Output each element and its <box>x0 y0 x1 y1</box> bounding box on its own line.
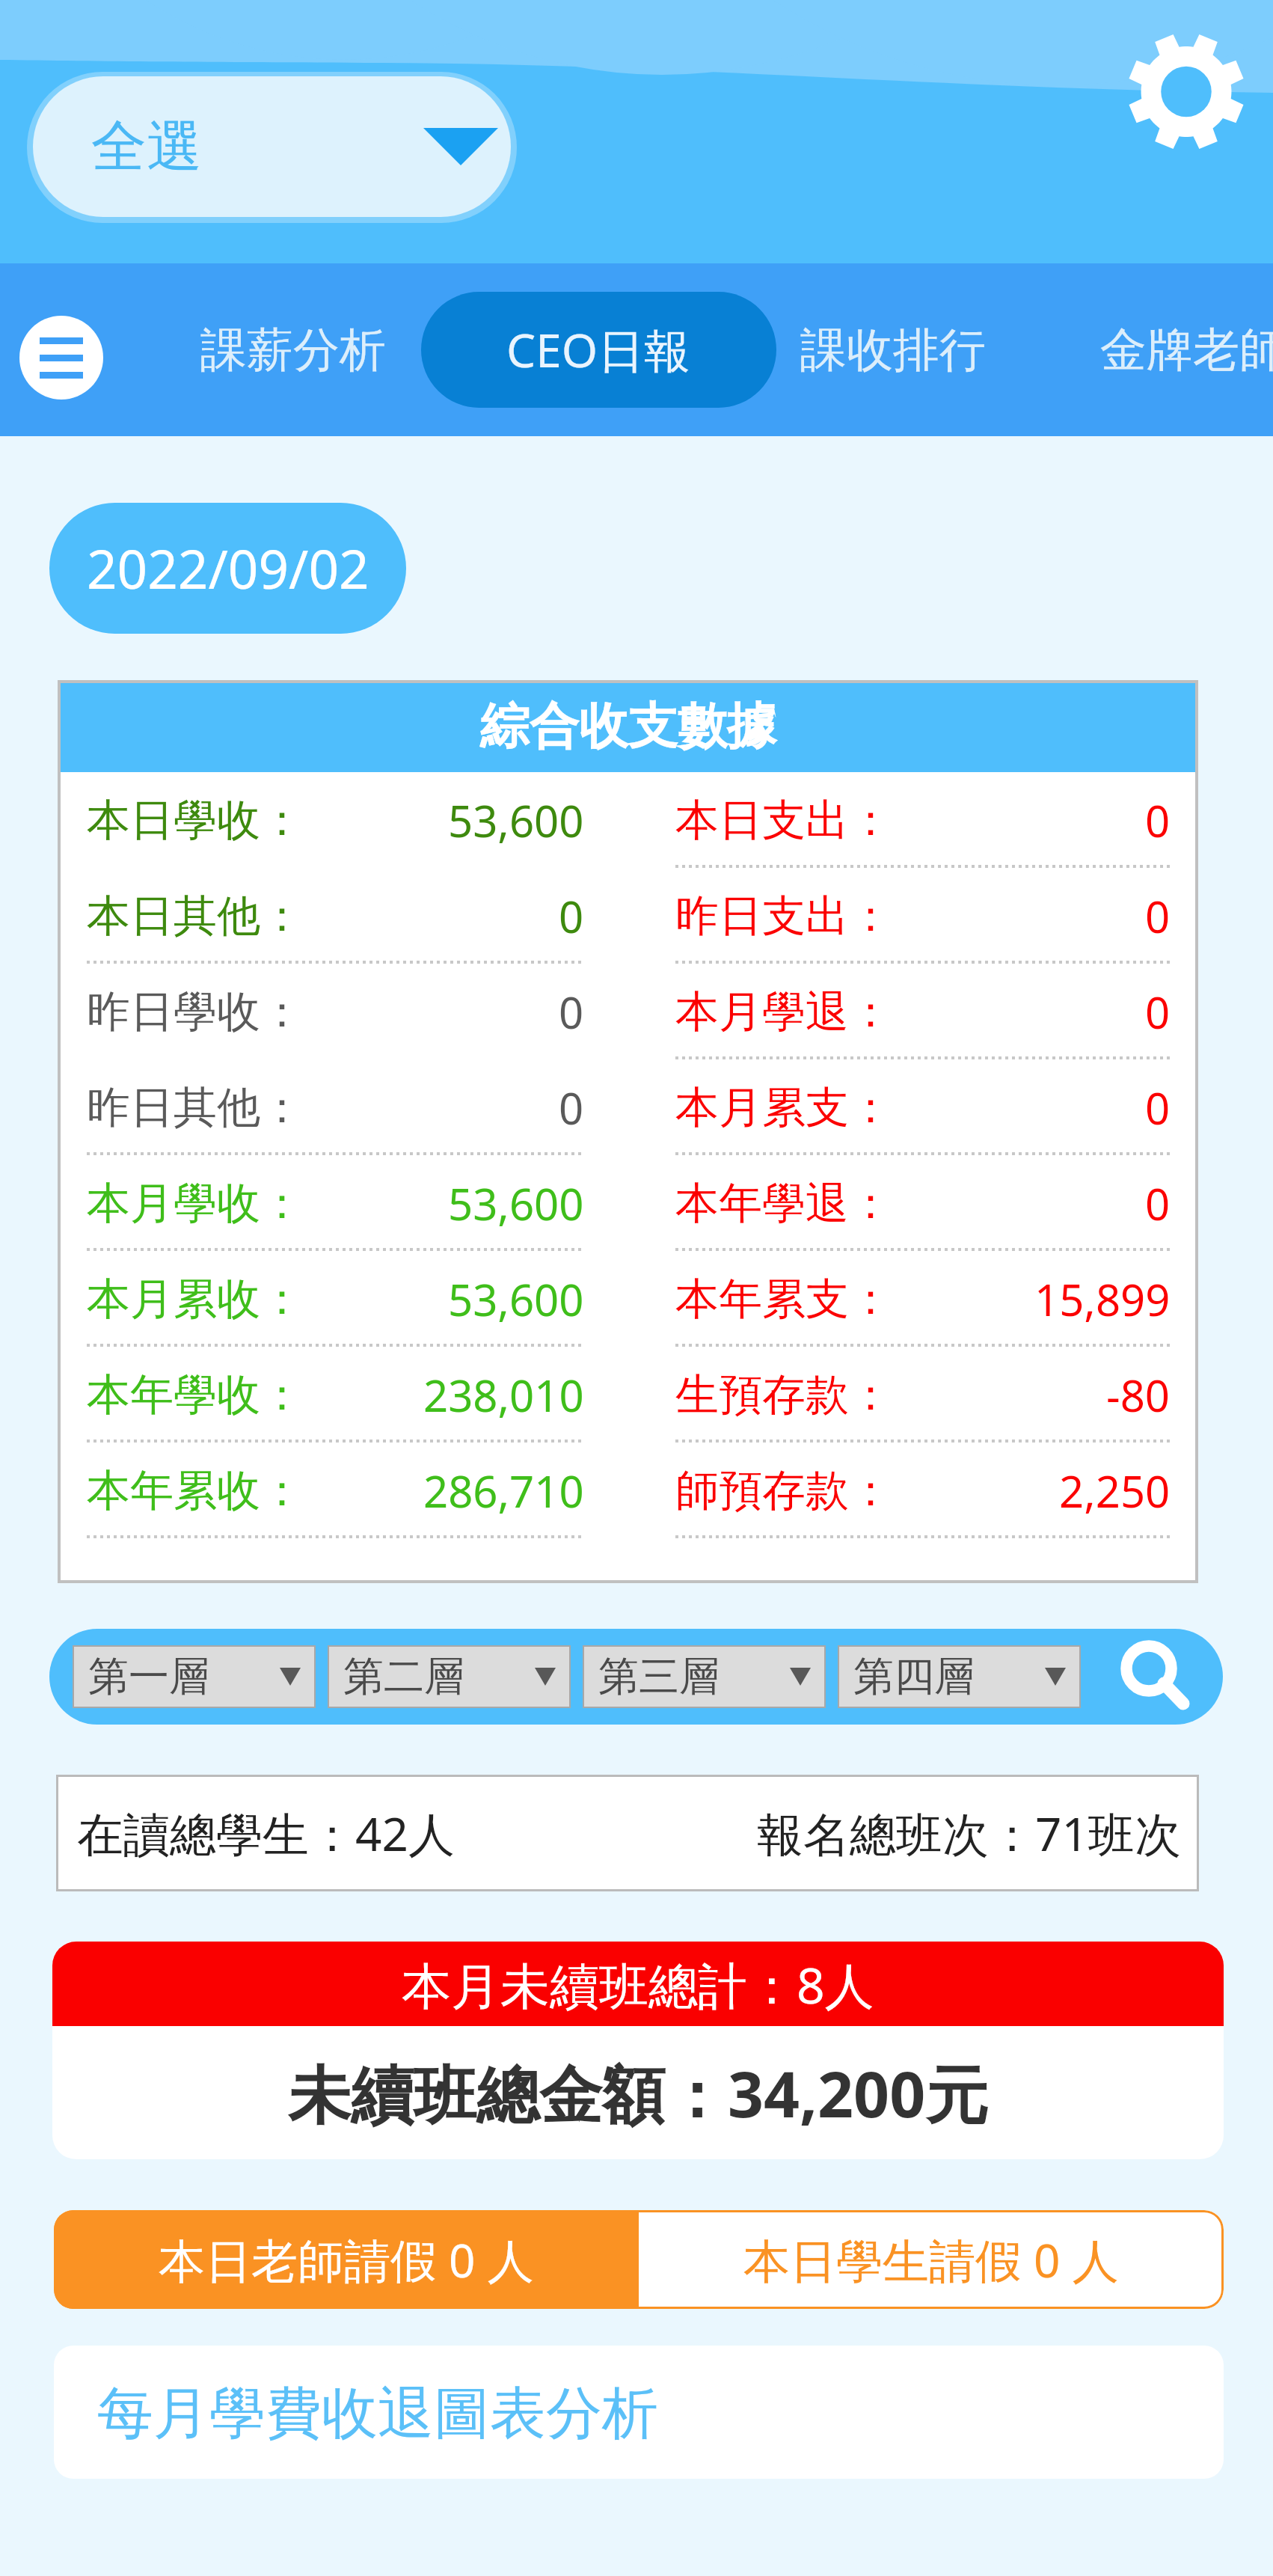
staticText: 2,250 <box>1059 1461 1171 1520</box>
staticText: 未續班總金額：34,200元 <box>288 2050 989 2136</box>
staticText: 本日老師請假 0 人 <box>159 2228 534 2292</box>
staticText: 15,899 <box>1034 1270 1171 1329</box>
staticText: 0 <box>1145 791 1171 850</box>
staticText: 報名總班次：71班次 <box>757 1802 1181 1865</box>
staticText: 0 <box>1145 1078 1171 1137</box>
staticText: 本年學退： <box>675 1176 892 1231</box>
staticText: 本日支出： <box>675 793 892 848</box>
staticText: 師預存款： <box>675 1463 892 1518</box>
staticText: 0 <box>559 982 584 1041</box>
staticText: 全選 <box>91 112 202 182</box>
staticText: 昨日其他： <box>87 1080 304 1135</box>
staticText: 0 <box>559 1078 584 1137</box>
button[interactable]: 第一層 <box>73 1645 316 1708</box>
staticText: 第一層 <box>88 1651 209 1702</box>
button[interactable]: Search <box>1114 1636 1196 1718</box>
staticText: 綜合收支數據 <box>480 695 776 757</box>
staticText: 第二層 <box>343 1651 464 1702</box>
staticText: 2022/09/02 <box>87 532 369 605</box>
button[interactable]: 金牌老師 <box>1113 321 1273 379</box>
staticText: 第三層 <box>598 1651 720 1702</box>
button[interactable]: 第四層 <box>838 1645 1081 1708</box>
staticText: 53,600 <box>448 1174 584 1233</box>
button[interactable]: 第二層 <box>328 1645 571 1708</box>
staticText: 本月累支： <box>675 1080 892 1135</box>
staticText: 生預存款： <box>675 1368 892 1422</box>
button[interactable]: 2022/09/02 <box>49 503 406 634</box>
staticText: 本月學收： <box>87 1176 304 1231</box>
staticText: 每月學費收退圖表分析 <box>97 2378 658 2449</box>
staticText: 本日其他： <box>87 889 304 943</box>
staticText: 0 <box>1145 982 1171 1041</box>
staticText: CEO日報 <box>506 318 691 382</box>
button[interactable]: 全選 <box>33 76 511 217</box>
staticText: 第四層 <box>853 1651 975 1702</box>
staticText: 286,710 <box>423 1461 584 1520</box>
staticText: -80 <box>1106 1365 1171 1425</box>
staticText: 本月未續班總計：8人 <box>402 1951 874 2018</box>
button[interactable]: Menu <box>19 316 103 400</box>
button[interactable]: 第三層 <box>583 1645 826 1708</box>
staticText: 238,010 <box>423 1365 584 1425</box>
button[interactable]: Settings <box>1131 33 1242 150</box>
staticText: 本日學生請假 0 人 <box>743 2228 1119 2292</box>
button[interactable]: 本日學生請假 0 人 <box>639 2210 1224 2309</box>
staticText: 53,600 <box>448 791 584 850</box>
staticText: 0 <box>1145 887 1171 946</box>
staticText: 本月累收： <box>87 1272 304 1327</box>
staticText: 0 <box>559 887 584 946</box>
staticText: 昨日支出： <box>675 889 892 943</box>
button[interactable]: CEO日報 <box>421 292 776 408</box>
staticText: 本月學退： <box>675 985 892 1039</box>
staticText: 本日學收： <box>87 793 304 848</box>
button[interactable]: 本日老師請假 0 人 <box>54 2210 639 2309</box>
staticText: 本年累收： <box>87 1463 304 1518</box>
staticText: 53,600 <box>448 1270 584 1329</box>
staticText: 昨日學收： <box>87 985 304 1039</box>
button[interactable]: 課收排行 <box>800 321 986 379</box>
button[interactable]: 課薪分析 <box>200 321 386 379</box>
staticText: 0 <box>1145 1174 1171 1233</box>
staticText: 本年累支： <box>675 1272 892 1327</box>
staticText: 本年學收： <box>87 1368 304 1422</box>
staticText: 在讀總學生：42人 <box>77 1802 455 1865</box>
